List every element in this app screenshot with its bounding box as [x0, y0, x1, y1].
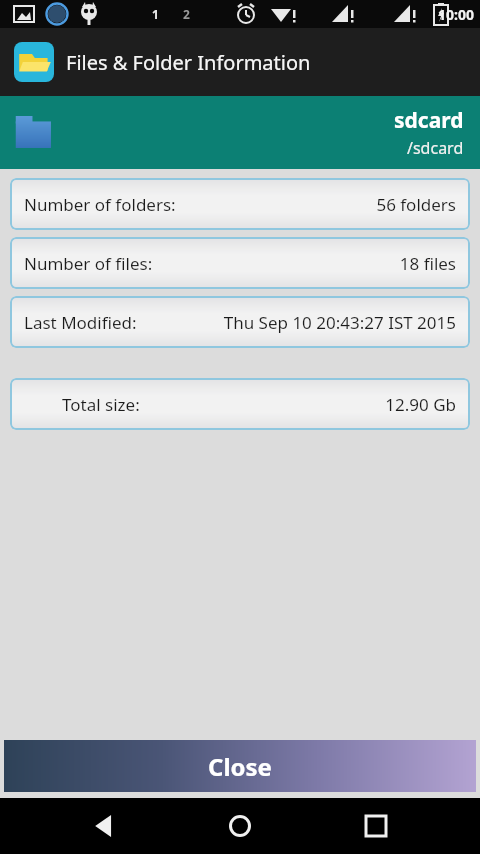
button[interactable]: Back: [72, 798, 136, 854]
staticText: Last Modified:: [24, 311, 137, 334]
staticText: 1: [152, 6, 159, 22]
staticText: 18 files: [399, 252, 456, 275]
button[interactable]: Close: [4, 740, 476, 792]
staticText: 56 folders: [376, 193, 456, 216]
staticText: /sdcard: [407, 137, 464, 159]
staticText: Number of folders:: [24, 193, 176, 216]
staticText: Thu Sep 10 20:43:27 IST 2015: [223, 311, 456, 334]
button[interactable]: Total size:: [10, 378, 470, 430]
staticText: Number of files:: [24, 252, 153, 275]
staticText: 2: [183, 6, 190, 22]
staticText: Close: [208, 750, 272, 783]
button[interactable]: Folder: [0, 96, 480, 169]
staticText: Total size:: [62, 393, 140, 416]
staticText: Files & Folder Information: [66, 49, 311, 76]
staticText: 10:00: [438, 5, 474, 24]
button[interactable]: App icon: [14, 42, 54, 82]
staticText: 12.90 Gb: [385, 393, 456, 416]
button[interactable]: Number of folders:: [10, 178, 470, 230]
other: Folder: [14, 116, 58, 150]
button[interactable]: Home: [208, 798, 272, 854]
button[interactable]: Number of files:: [10, 237, 470, 289]
button[interactable]: Last Modified:: [10, 296, 470, 348]
button[interactable]: Recent apps: [344, 798, 408, 854]
staticText: sdcard: [394, 106, 464, 135]
